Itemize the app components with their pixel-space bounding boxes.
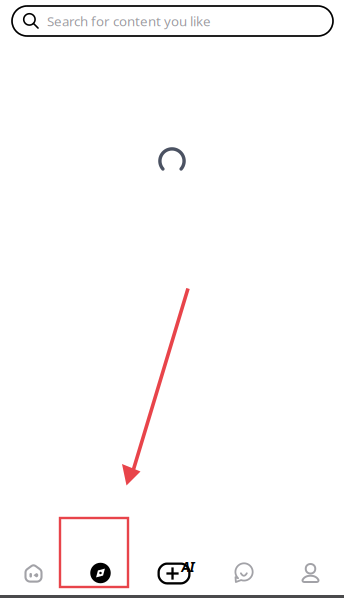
staticText: AI <box>181 558 194 576</box>
button[interactable]: Profile <box>276 545 344 600</box>
button[interactable]: Search for content you like <box>12 6 333 36</box>
button[interactable]: Home <box>0 545 67 600</box>
button[interactable]: Discover <box>66 545 134 600</box>
staticText: Search for content you like <box>47 12 211 30</box>
button[interactable]: Messages <box>209 545 277 600</box>
button[interactable]: Create with AI <box>145 545 213 600</box>
